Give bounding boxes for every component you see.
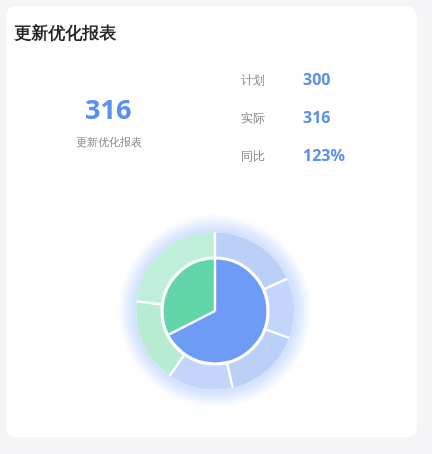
button[interactable]: 实际	[241, 106, 381, 128]
button[interactable]: 更新优化报表环形图	[103, 199, 327, 423]
staticText: 同比	[241, 148, 265, 163]
button[interactable]: 计划	[241, 68, 381, 90]
staticText: 300	[303, 68, 331, 90]
staticText: 更新优化报表	[76, 135, 142, 149]
staticText: 316	[303, 106, 331, 128]
staticText: 123%	[303, 144, 345, 166]
staticText: 更新优化报表	[14, 23, 116, 44]
button[interactable]: 同比	[241, 144, 381, 166]
staticText: 计划	[241, 72, 265, 87]
staticText: 实际	[241, 110, 265, 125]
staticText: 316	[85, 90, 132, 127]
